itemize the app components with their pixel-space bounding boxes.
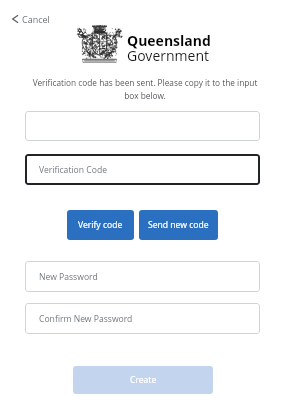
staticText: Cancel xyxy=(22,13,50,25)
other: Back xyxy=(12,15,18,23)
staticText: Queensland xyxy=(127,31,211,50)
staticText: Government xyxy=(127,46,209,65)
button[interactable]: New Password xyxy=(25,261,260,292)
button[interactable]: Verification Code xyxy=(25,154,260,185)
staticText: New Password xyxy=(39,271,98,283)
staticText: Verification code has been sent. Please … xyxy=(28,77,262,102)
button[interactable]: Send new code xyxy=(139,210,218,240)
button[interactable]: Verify code xyxy=(67,210,134,240)
button[interactable] xyxy=(25,111,260,141)
staticText: Confirm New Password xyxy=(39,313,133,325)
button[interactable]: Confirm New Password xyxy=(25,303,260,334)
staticText: Verification Code xyxy=(39,164,108,176)
staticText: Verify code xyxy=(78,219,123,231)
button[interactable]: Back xyxy=(9,9,53,29)
staticText: Create xyxy=(130,374,157,386)
staticText: Send new code xyxy=(148,219,209,231)
button[interactable]: Create xyxy=(73,366,213,394)
